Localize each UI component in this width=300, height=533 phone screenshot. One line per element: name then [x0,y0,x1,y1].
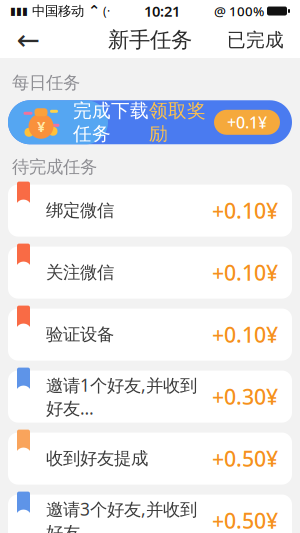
staticText: 每日任务 [12,72,80,93]
staticText: +0.50¥ [212,444,278,473]
staticText: 待完成任务 [12,156,97,178]
staticText: 绑定微信 [46,200,114,221]
staticText: ⌃ [88,3,100,19]
staticText: ← [16,24,39,56]
staticText: +0.1¥ [227,112,267,133]
staticText: 已完成 [227,28,284,51]
staticText: 收到好友提成 [46,448,148,469]
button[interactable]: 绑定微信 [8,185,292,237]
staticText: 验证设备 [46,324,114,345]
button[interactable]: 关注微信 [8,247,292,299]
button[interactable]: 验证设备 [8,309,292,361]
staticText: +0.10¥ [212,196,278,225]
staticText: +0.10¥ [212,258,278,287]
staticText: ¥ [37,117,45,136]
button[interactable]: 返回 [6,22,50,58]
staticText: 邀请1个好友,并收到好友… [46,374,197,420]
staticText: 关注微信 [46,262,114,283]
staticText: 新手任务 [108,27,192,53]
staticText: +0.30¥ [212,382,278,411]
staticText: 中国移动 [28,3,88,19]
staticText: +0.50¥ [212,506,278,533]
staticText: 邀请3个好友,并收到好友… [46,498,197,533]
staticText: 完成下载任务 [73,99,149,145]
staticText: (· [100,3,110,19]
button[interactable]: 收到好友提成 [8,433,292,485]
staticText: @ 100% [214,2,264,20]
button[interactable]: 邀请3个好友,并收到好友… [8,495,292,533]
staticText: 领取奖励 [149,99,206,145]
button[interactable]: 邀请1个好友,并收到好友… [8,371,292,423]
staticText: +0.10¥ [212,320,278,349]
staticText: 10:21 [144,1,180,21]
button[interactable]: 已完成 [217,22,294,58]
button[interactable]: ¥ [8,100,292,144]
staticText: ▮▮▮ [10,5,28,17]
